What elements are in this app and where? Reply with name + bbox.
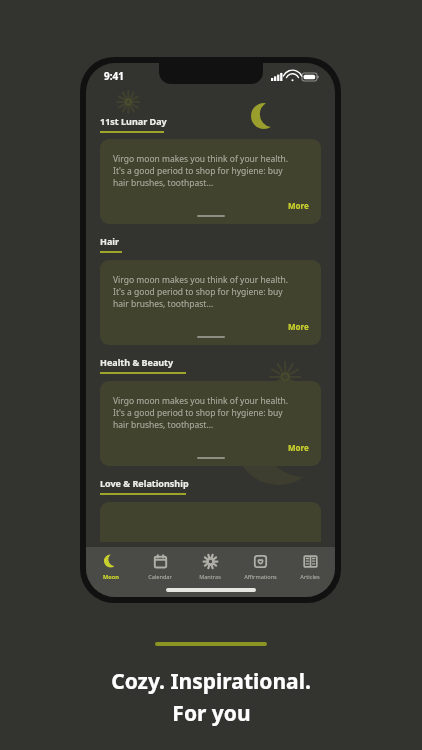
button[interactable]: Calendar <box>135 547 185 597</box>
staticText: 9:41 <box>104 69 124 83</box>
button[interactable]: Moon <box>86 547 135 597</box>
staticText: Affirmations <box>244 573 277 581</box>
button[interactable]: More <box>288 321 309 332</box>
staticText: Love & Relationship <box>100 477 189 489</box>
staticText: Cozy. Inspirational. <box>111 667 311 696</box>
staticText: More <box>288 442 309 453</box>
button[interactable]: Articles <box>285 547 335 597</box>
staticText: hair brushes, toothpast... <box>113 298 214 310</box>
staticText: Articles <box>300 573 320 581</box>
staticText: It's a good period to shop for hygiene: … <box>113 407 283 419</box>
staticText: hair brushes, toothpast... <box>113 419 214 431</box>
staticText: Health & Beauty <box>100 356 174 368</box>
staticText: Mantras <box>199 573 221 581</box>
button[interactable]: Virgo moon makes you think of your healt… <box>100 139 321 224</box>
staticText: Calendar <box>148 573 172 581</box>
button[interactable]: Virgo moon makes you think of your healt… <box>100 260 321 345</box>
staticText: Virgo moon makes you think of your healt… <box>113 153 289 165</box>
button[interactable]: More <box>288 442 309 453</box>
staticText: 11st Lunar Day <box>100 115 167 127</box>
staticText: Virgo moon makes you think of your healt… <box>113 395 289 407</box>
staticText: It's a good period to shop for hygiene: … <box>113 165 283 177</box>
button[interactable]: Affirmations <box>235 547 285 597</box>
staticText: It's a good period to shop for hygiene: … <box>113 286 283 298</box>
staticText: Virgo moon makes you think of your healt… <box>113 274 289 286</box>
staticText: hair brushes, toothpast... <box>113 177 214 189</box>
staticText: More <box>288 321 309 332</box>
staticText: For you <box>172 699 251 728</box>
button[interactable]: Virgo moon makes you think of your healt… <box>100 381 321 466</box>
button[interactable]: Mantras <box>185 547 235 597</box>
staticText: More <box>288 200 309 211</box>
staticText: Moon <box>103 573 119 581</box>
staticText: Hair <box>100 235 119 247</box>
button[interactable]: More <box>288 200 309 211</box>
